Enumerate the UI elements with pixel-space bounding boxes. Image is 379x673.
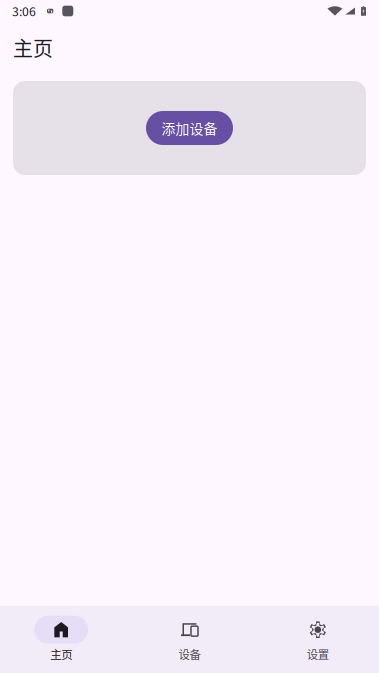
- staticText: 添加设备: [161, 118, 217, 138]
- button[interactable]: 添加设备: [146, 111, 233, 145]
- staticText: 3:06: [12, 2, 36, 20]
- staticText: 主页: [50, 646, 72, 662]
- button[interactable]: 设置: [255, 605, 379, 673]
- staticText: 主页: [13, 33, 53, 62]
- staticText: 设置: [307, 646, 329, 662]
- staticText: 设备: [178, 646, 200, 662]
- button[interactable]: 设备: [126, 605, 253, 673]
- button[interactable]: 主页: [0, 605, 124, 673]
